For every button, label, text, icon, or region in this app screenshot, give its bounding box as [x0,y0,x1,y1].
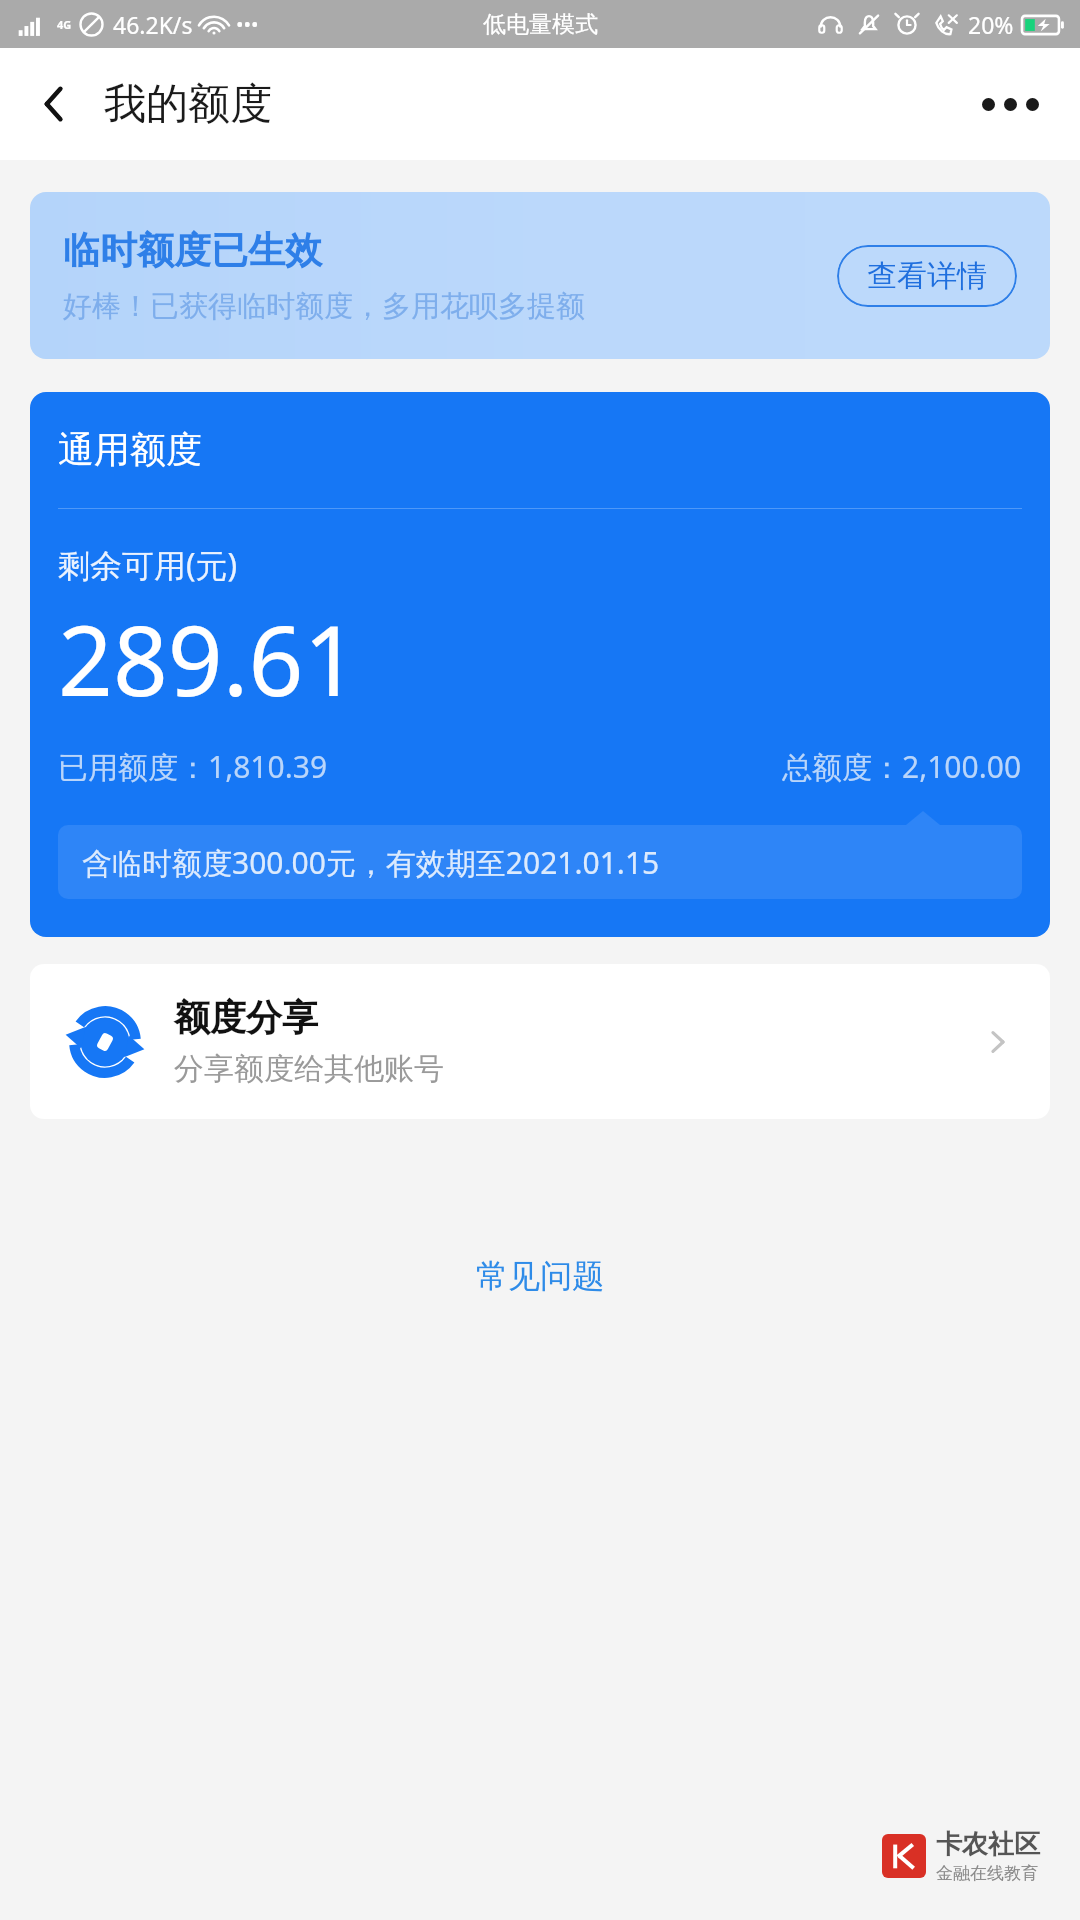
button[interactable]: 临时额度已生效 [30,192,1050,359]
staticText: 临时额度已生效 [63,227,322,274]
staticText: 查看详情 [867,257,987,295]
staticText: 289.61 [58,593,359,724]
staticText: 卡农社区 [936,1828,1040,1861]
button[interactable]: More options [970,72,1050,136]
staticText: 低电量模式 [483,10,598,39]
staticText: 4G [57,17,72,32]
button[interactable]: 通用额度 [30,392,1050,937]
staticText: 已用额度：1,810.39 [58,746,328,787]
staticText: 常见问题 [476,1256,604,1296]
staticText: 剩余可用(元) [58,543,238,587]
staticText: 分享额度给其他账号 [174,1050,444,1088]
staticText: 通用额度 [58,427,202,472]
staticText: 我的额度 [104,78,272,131]
staticText: 额度分享 [174,995,318,1040]
staticText: 含临时额度300.00元，有效期至2021.01.15 [82,842,660,883]
staticText: 20% [968,9,1014,40]
staticText: 金融在线教育 [936,1863,1038,1884]
staticText: ••• [236,11,259,38]
button[interactable]: 常见问题 [452,1244,628,1308]
button[interactable]: 额度分享 [30,964,1050,1119]
button[interactable]: 查看详情 [837,245,1017,307]
staticText: 总额度：2,100.00 [782,746,1022,787]
staticText: 46.2K/s [113,9,193,40]
staticText: 好棒！已获得临时额度，多用花呗多提额 [63,288,585,325]
button[interactable]: Back [22,72,86,136]
